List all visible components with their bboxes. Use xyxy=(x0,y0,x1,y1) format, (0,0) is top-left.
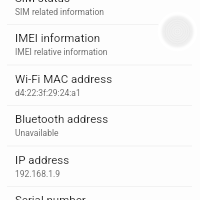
staticText: Unavailable xyxy=(15,128,59,138)
button[interactable]: SIM status xyxy=(0,0,200,25)
staticText: SIM status xyxy=(15,0,70,4)
staticText: Bluetooth address xyxy=(15,112,109,125)
button[interactable]: IMEI information xyxy=(0,24,200,65)
button[interactable]: Bluetooth address xyxy=(0,105,200,146)
button[interactable]: Serial number xyxy=(0,186,200,200)
staticText: SIM related information xyxy=(15,7,104,17)
staticText: IMEI information xyxy=(15,31,101,44)
button[interactable]: Wi-Fi MAC address xyxy=(0,65,200,106)
staticText: Wi-Fi MAC address xyxy=(15,72,113,85)
staticText: IMEI relative information xyxy=(15,47,108,57)
staticText: d4:22:3f:29:24:a1 xyxy=(15,88,81,98)
staticText: Serial number xyxy=(15,193,86,200)
staticText: 192.168.1.9 xyxy=(15,169,60,179)
staticText: IP address xyxy=(15,153,70,166)
button[interactable]: IP address xyxy=(0,146,200,187)
